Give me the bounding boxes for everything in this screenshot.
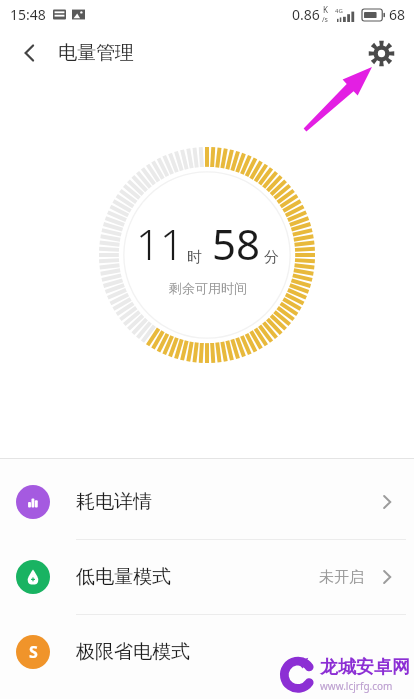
staticText: /s [322,15,328,25]
staticText: 0.86 [292,5,320,24]
staticText: 耗电详情 [76,490,152,514]
staticText: 龙城安卓网 [320,656,410,679]
staticText: 低电量模式 [76,565,171,589]
staticText: 68 [389,5,406,24]
staticText: 4G [335,7,343,15]
button[interactable]: S [0,615,414,689]
staticText: K [323,4,328,15]
staticText: 58 [212,215,261,272]
staticText: 剩余可用时间 [169,280,247,296]
staticText: 时 [187,248,202,267]
button[interactable]: Settings [358,30,404,76]
staticText: www.lcjrfg.com [320,679,393,693]
staticText: S [29,641,38,663]
button[interactable]: 耗电详情 [0,465,414,539]
staticText: 未开启 [319,568,364,587]
button[interactable]: Back [8,31,52,75]
staticText: 分 [264,248,279,267]
staticText: 极限省电模式 [76,640,190,664]
staticText: 15:48 [10,5,46,24]
staticText: 11 [136,215,184,272]
staticText: 电量管理 [58,41,134,65]
button[interactable]: 低电量模式 [0,540,414,614]
